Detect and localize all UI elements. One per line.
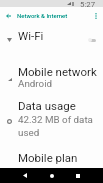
button[interactable]: Back [17,168,33,183]
button[interactable] [0,90,103,140]
staticText: Data usage [18,99,76,112]
staticText: 42.32 MB of data used [18,114,99,139]
staticText: 5:27 [80,0,96,7]
button[interactable]: Wi-Fi toggle [84,33,100,47]
button[interactable]: More options [89,7,103,24]
staticText: Mobile plan [18,151,78,164]
staticText: Wi-Fi [18,29,44,42]
button[interactable]: Back [0,7,16,24]
staticText: Mobile network [18,65,97,78]
button[interactable] [0,140,103,168]
button[interactable] [0,48,103,90]
staticText: Android [18,78,53,89]
button[interactable]: Recents [70,168,86,183]
staticText: Network & Internet [17,12,68,19]
button[interactable] [0,24,103,48]
button[interactable]: Home [44,168,60,183]
